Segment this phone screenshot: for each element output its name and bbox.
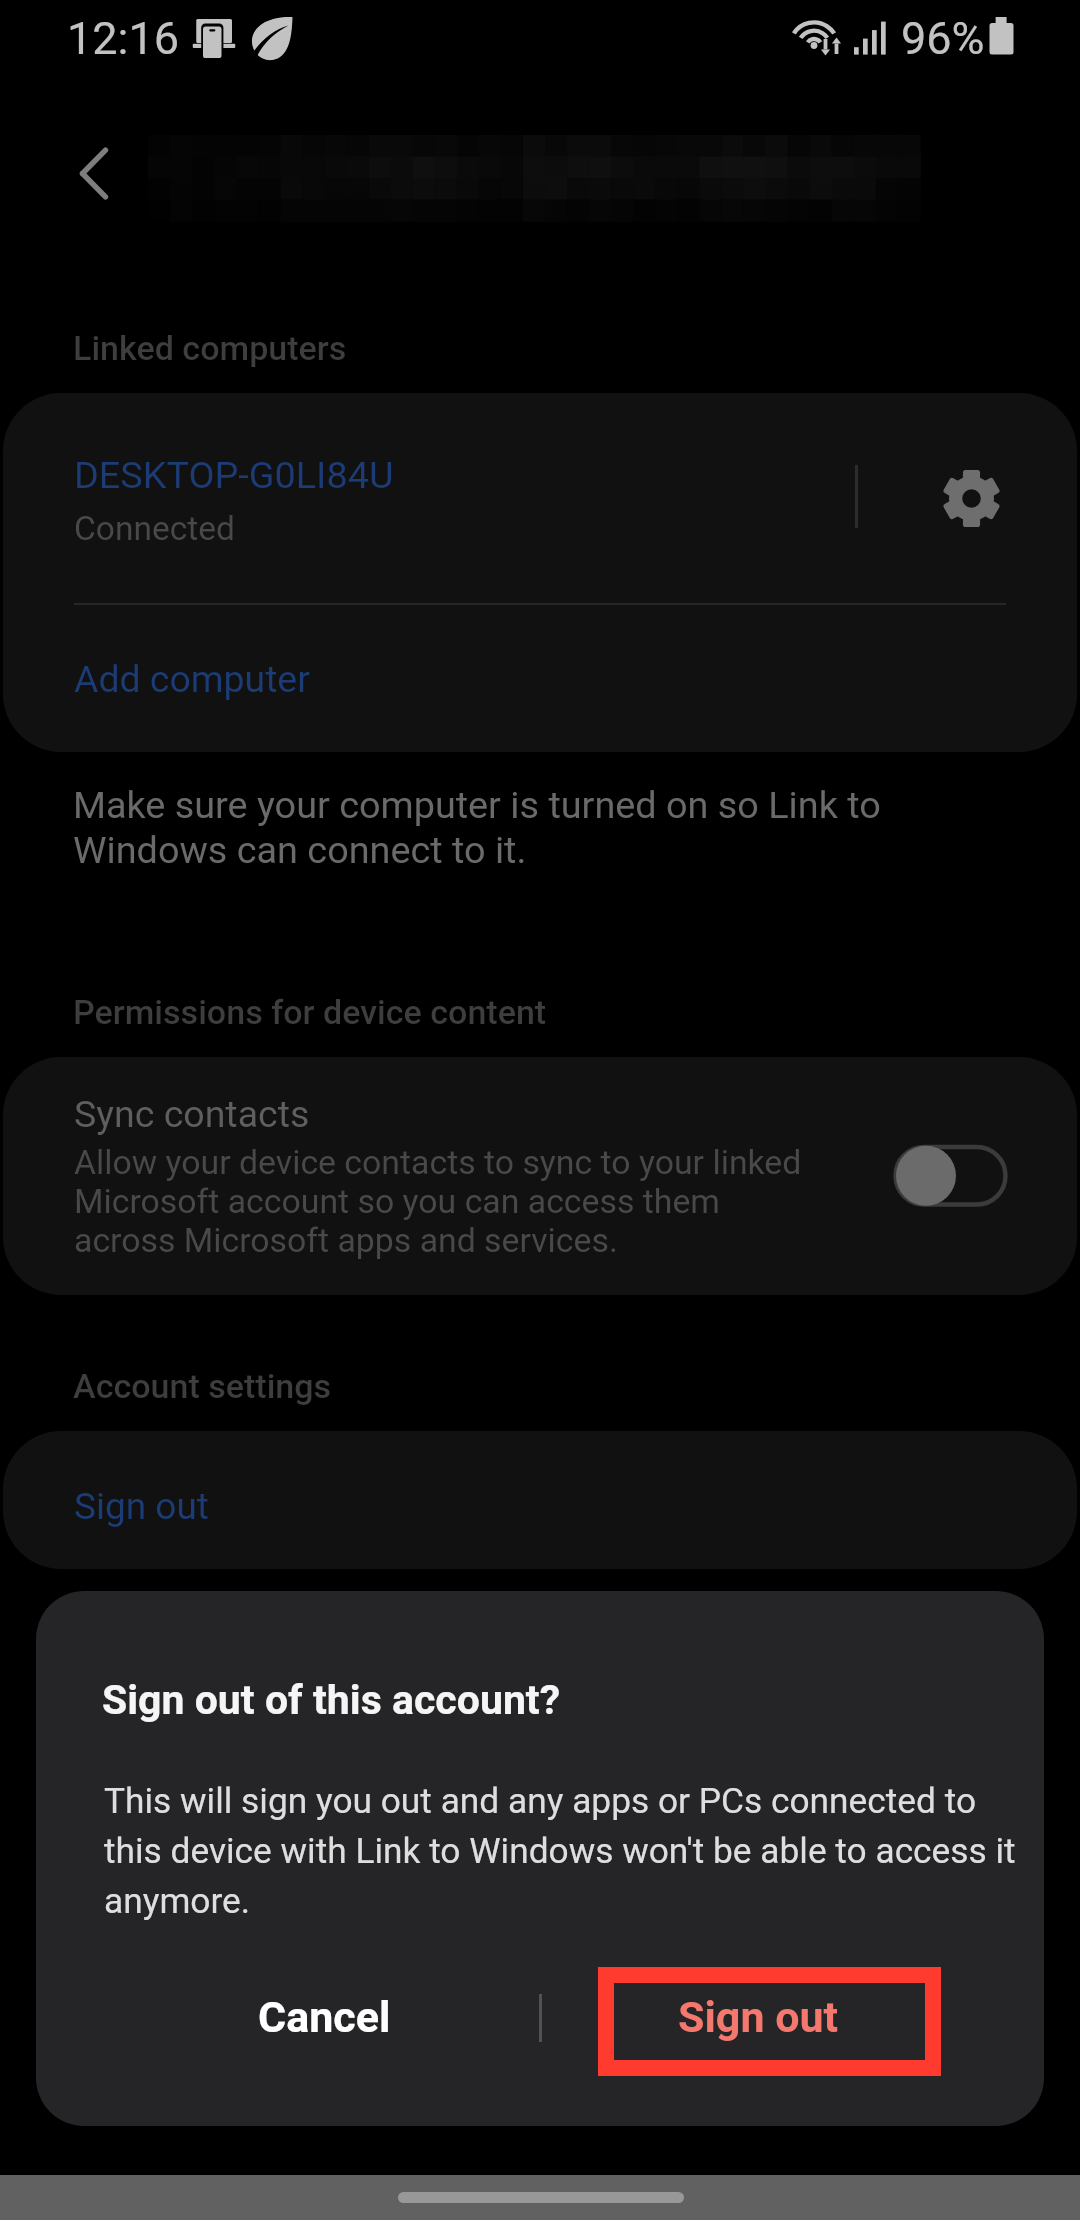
staticText: Linked computers bbox=[73, 328, 347, 368]
staticText: 96% bbox=[901, 12, 985, 65]
staticText: Permissions for device content bbox=[73, 992, 547, 1032]
staticText: Add computer bbox=[74, 657, 310, 701]
staticText: 12:16 bbox=[67, 12, 180, 65]
button[interactable]: Cancel bbox=[36, 1946, 539, 2126]
button[interactable]: Sign out bbox=[541, 1946, 1044, 2126]
button[interactable]: DESKTOP-G0LI84U bbox=[3, 393, 1077, 604]
staticText: DESKTOP-G0LI84U bbox=[74, 453, 394, 497]
staticText: Account settings bbox=[73, 1366, 332, 1406]
staticText: Sync contacts bbox=[74, 1092, 310, 1136]
button[interactable]: Sign out bbox=[3, 1431, 1077, 1569]
button[interactable]: Navigate up bbox=[43, 136, 123, 216]
staticText: Make sure your computer is turned on so … bbox=[73, 783, 881, 872]
staticText: This will sign you out and any apps or P… bbox=[104, 1780, 1016, 1921]
staticText: Allow your device contacts to sync to yo… bbox=[74, 1143, 802, 1260]
button[interactable]: Sync contacts bbox=[3, 1057, 1077, 1295]
button[interactable]: Add computer bbox=[3, 605, 1077, 752]
staticText: Sign out of this account? bbox=[102, 1676, 561, 1724]
button[interactable]: Sync contacts, off bbox=[878, 1140, 1018, 1212]
button[interactable]: Computer settings bbox=[924, 451, 1020, 547]
staticText: Cancel bbox=[258, 1992, 391, 2042]
staticText: Sign out bbox=[74, 1485, 209, 1528]
staticText: Sign out bbox=[678, 1992, 839, 2042]
staticText: Connected bbox=[74, 509, 235, 548]
